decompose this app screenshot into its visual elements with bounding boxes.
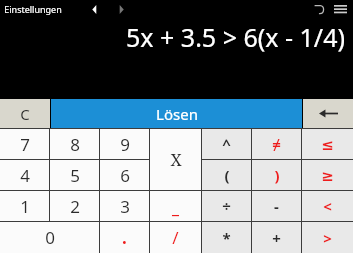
button[interactable]: Undo: [311, 1, 327, 17]
button[interactable]: <: [302, 191, 353, 221]
button[interactable]: X: [150, 129, 201, 190]
staticText: >: [323, 228, 332, 248]
button[interactable]: 6: [100, 160, 149, 190]
button[interactable]: +: [252, 222, 301, 253]
button[interactable]: *: [202, 222, 251, 253]
staticText: ): [274, 165, 280, 185]
button[interactable]: 7: [0, 129, 49, 159]
staticText: 2: [70, 195, 80, 218]
staticText: 3: [120, 195, 130, 218]
staticText: _: [172, 195, 179, 218]
button[interactable]: Menu: [332, 1, 348, 17]
button[interactable]: 9: [100, 129, 149, 159]
button[interactable]: ≠: [252, 129, 301, 159]
staticText: ≠: [272, 134, 281, 154]
button[interactable]: 5: [50, 160, 99, 190]
button[interactable]: 4: [0, 160, 49, 190]
staticText: C: [20, 104, 30, 124]
staticText: -: [274, 196, 279, 216]
staticText: 8: [70, 133, 80, 156]
button[interactable]: 5x + 3.5 > 6(x - 1/4): [0, 18, 353, 99]
button[interactable]: Previous: [86, 1, 102, 17]
staticText: 5: [70, 164, 80, 187]
button[interactable]: Next: [113, 1, 129, 17]
button[interactable]: 3: [100, 191, 149, 221]
staticText: 4: [20, 164, 30, 187]
button[interactable]: 2: [50, 191, 99, 221]
button[interactable]: >: [302, 222, 353, 253]
button[interactable]: ≥: [302, 160, 353, 190]
staticText: ≥: [321, 167, 334, 184]
staticText: ^: [222, 134, 231, 154]
staticText: Einstellungen: [4, 3, 62, 15]
button[interactable]: Lösen: [51, 99, 302, 128]
staticText: 7: [20, 133, 30, 156]
button[interactable]: Einstellungen: [4, 3, 62, 15]
staticText: /: [172, 226, 179, 249]
staticText: <: [323, 196, 332, 216]
button[interactable]: C: [0, 99, 50, 128]
staticText: .: [122, 226, 127, 249]
staticText: 9: [120, 133, 130, 156]
staticText: X: [170, 148, 182, 171]
button[interactable]: ≤: [302, 129, 353, 159]
staticText: ≤: [321, 136, 334, 153]
button[interactable]: 0: [0, 222, 99, 253]
staticText: Lösen: [156, 104, 198, 124]
button[interactable]: ): [252, 160, 301, 190]
button[interactable]: /: [150, 222, 201, 253]
button[interactable]: _: [150, 191, 201, 221]
staticText: *: [222, 228, 231, 248]
staticText: (: [224, 165, 230, 185]
button[interactable]: ^: [202, 129, 251, 159]
button[interactable]: 8: [50, 129, 99, 159]
button[interactable]: 1: [0, 191, 49, 221]
button[interactable]: -: [252, 191, 301, 221]
staticText: 5x + 3.5 > 6(x - 1/4): [126, 20, 345, 54]
staticText: 1: [20, 195, 30, 218]
staticText: +: [272, 228, 281, 248]
button[interactable]: Backspace: [303, 99, 353, 128]
staticText: 6: [120, 164, 130, 187]
button[interactable]: (: [202, 160, 251, 190]
staticText: ÷: [222, 196, 231, 216]
button[interactable]: ÷: [202, 191, 251, 221]
staticText: 0: [45, 226, 55, 249]
button[interactable]: .: [100, 222, 149, 253]
